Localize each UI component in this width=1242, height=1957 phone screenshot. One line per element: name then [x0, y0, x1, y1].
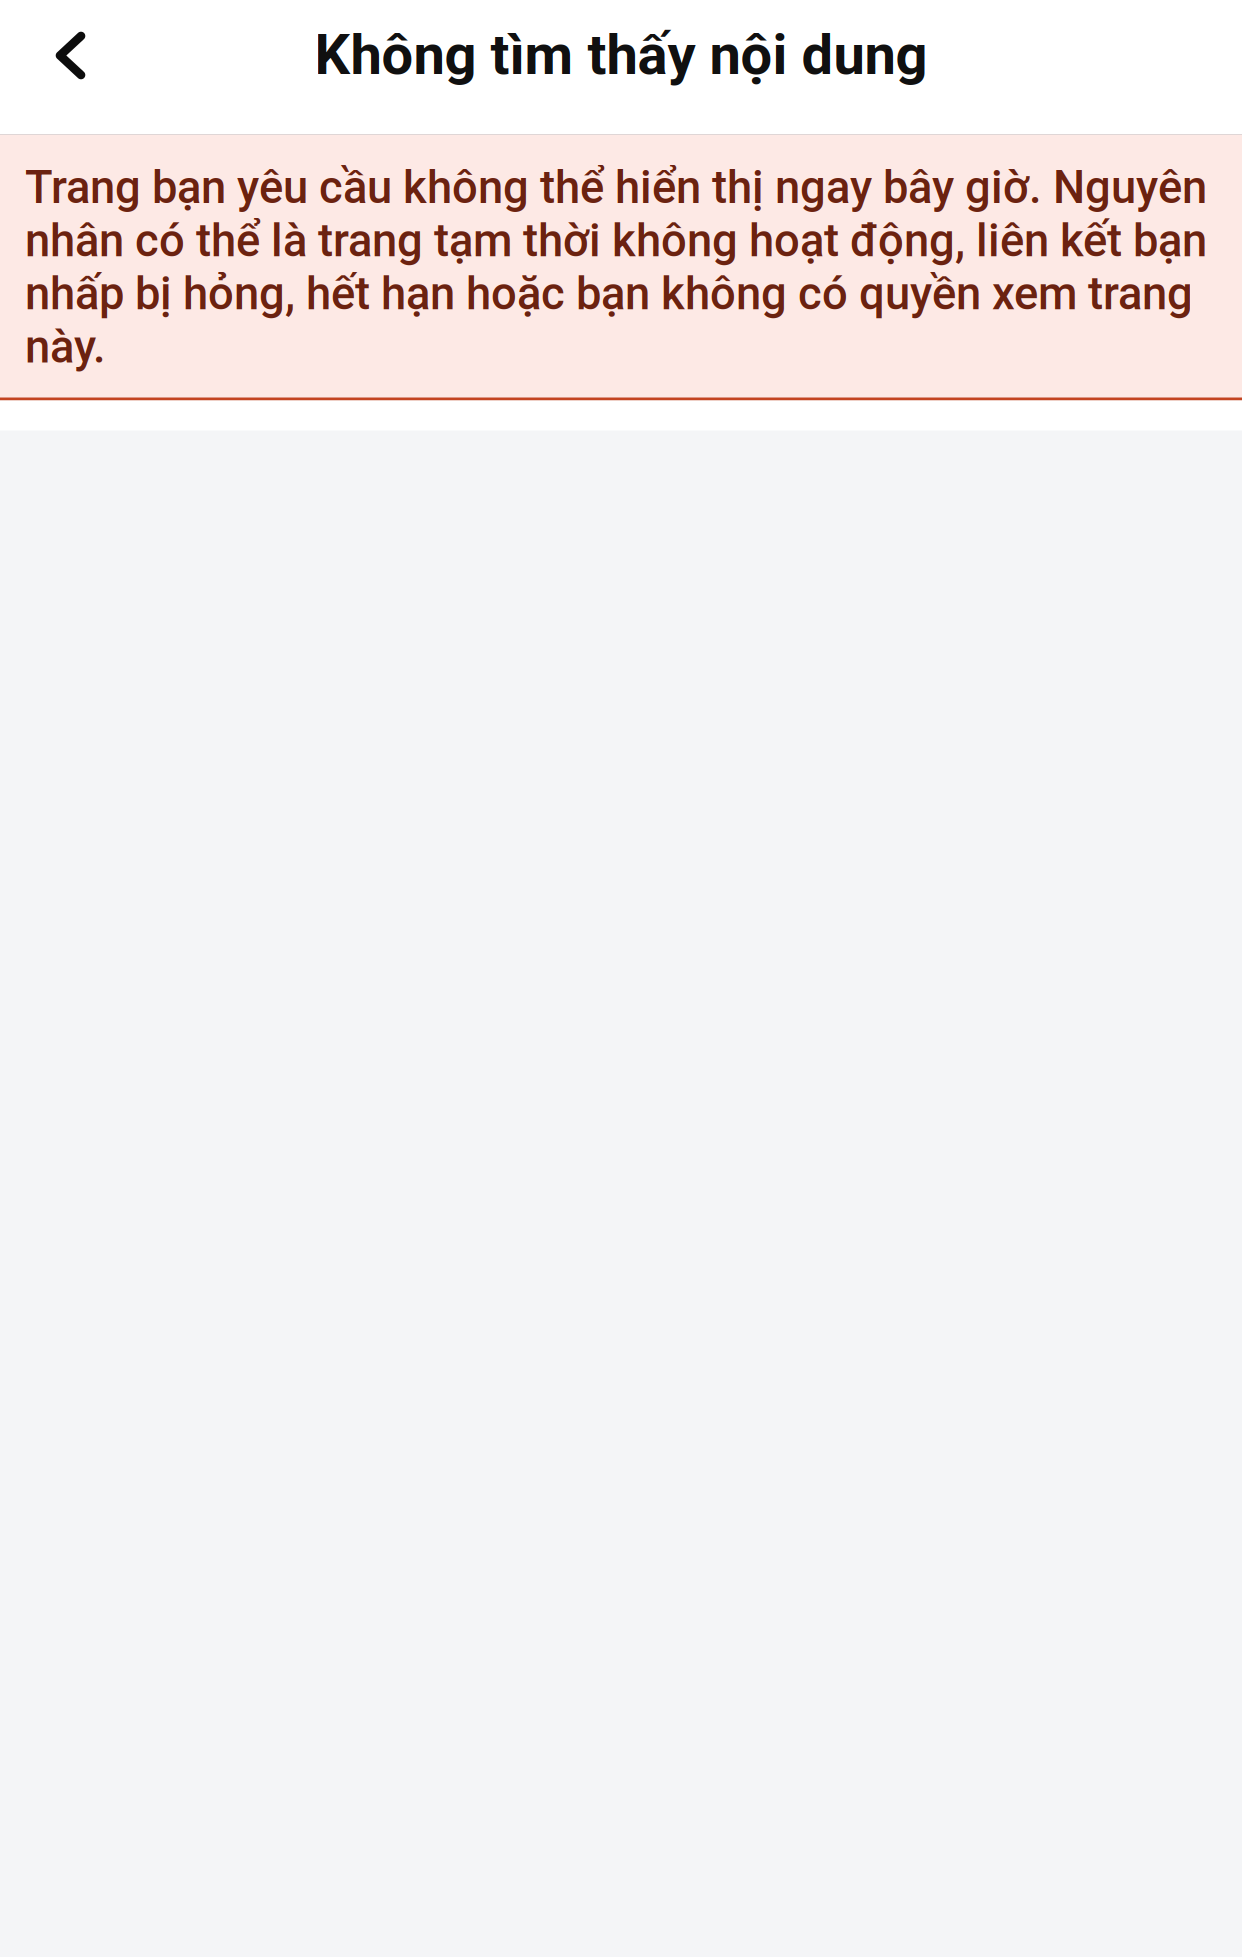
staticText: Không tìm thấy nội dung [314, 22, 927, 88]
button[interactable]: Back [0, 0, 150, 134]
staticText: Trang bạn yêu cầu không thể hiển thị nga… [25, 161, 1207, 373]
